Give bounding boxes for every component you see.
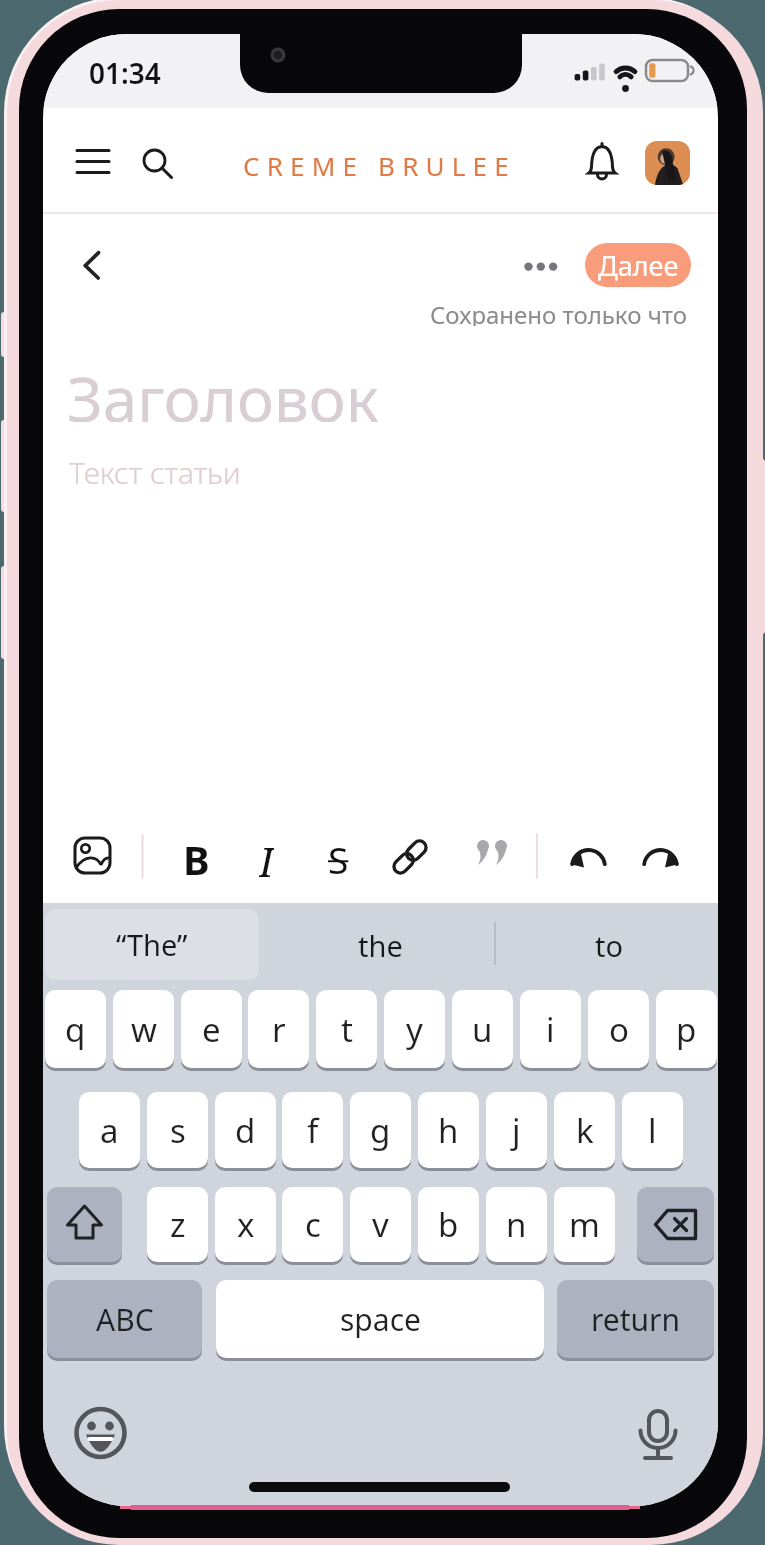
staticText: d [235,1108,256,1153]
button[interactable] [67,830,119,882]
button[interactable] [131,137,179,185]
button[interactable] [69,140,117,188]
staticText: j [512,1108,521,1153]
staticText: f [307,1108,319,1153]
button[interactable]: a [79,1092,140,1168]
button[interactable] [243,830,289,882]
button[interactable]: v [350,1187,411,1262]
button[interactable]: f [282,1092,343,1168]
button[interactable]: k [554,1092,615,1168]
button[interactable]: u [452,990,513,1068]
button[interactable]: q [45,990,106,1068]
staticText: return [591,1299,681,1340]
staticText: m [569,1202,600,1247]
staticText: Сохранено только что [430,298,687,326]
button[interactable]: “The” [45,909,259,980]
staticText: u [472,1007,493,1052]
staticText: z [170,1202,186,1247]
staticText: “The” [116,925,188,964]
button[interactable]: i [520,990,581,1068]
staticText: b [438,1202,459,1247]
button[interactable]: c [282,1187,343,1262]
staticText: a [100,1108,119,1153]
button[interactable]: l [622,1092,683,1168]
staticText: Текст статьи [69,452,241,488]
staticText: h [438,1108,459,1153]
button[interactable]: b [418,1187,479,1262]
button[interactable]: Далее [585,243,691,287]
staticText: space [340,1299,421,1340]
staticText: to [595,926,624,964]
button[interactable]: s [147,1092,208,1168]
staticText: the [358,926,403,964]
staticText: n [506,1202,527,1247]
staticText: r [272,1007,286,1052]
button[interactable] [631,1406,687,1462]
staticText: g [370,1108,391,1153]
button[interactable]: n [486,1187,547,1262]
button[interactable]: z [147,1187,208,1262]
staticText: c [305,1202,321,1247]
button[interactable]: g [350,1092,411,1168]
button[interactable]: space [216,1280,544,1358]
button[interactable] [173,830,219,882]
staticText: l [648,1108,657,1153]
staticText: e [202,1007,221,1052]
staticText: B [183,832,210,880]
staticText: v [372,1202,389,1247]
staticText: s [170,1108,186,1153]
button[interactable]: r [248,990,309,1068]
button[interactable] [563,830,615,882]
staticText: x [237,1202,255,1247]
button[interactable] [579,137,627,185]
button[interactable] [73,240,115,292]
button[interactable] [637,1187,714,1262]
staticText: k [576,1108,594,1153]
button[interactable] [313,830,363,882]
button[interactable]: to [579,926,639,964]
button[interactable]: j [486,1092,547,1168]
button[interactable] [73,1406,129,1462]
button[interactable]: ABC [47,1280,202,1358]
button[interactable]: m [554,1187,615,1262]
staticText: ABC [96,1299,154,1340]
button[interactable] [385,830,435,882]
staticText: o [609,1007,629,1052]
staticText: t [341,1007,353,1052]
staticText: S [328,834,349,880]
staticText: CREME BRULEE [243,148,516,183]
button[interactable]: p [656,990,717,1068]
button[interactable]: d [215,1092,276,1168]
button[interactable]: t [316,990,377,1068]
button[interactable] [645,141,690,185]
button[interactable] [47,1187,122,1262]
staticText: Заголовок [67,356,379,422]
staticText: i [546,1007,555,1052]
button[interactable]: o [588,990,649,1068]
staticText: w [131,1007,157,1052]
staticText: I [259,834,274,880]
button[interactable] [513,246,559,286]
staticText: q [65,1007,86,1052]
staticText: 01:34 [89,54,161,88]
button[interactable] [635,830,687,882]
button[interactable]: h [418,1092,479,1168]
button[interactable]: w [113,990,174,1068]
staticText: y [406,1007,423,1052]
button[interactable]: e [181,990,242,1068]
button[interactable]: y [384,990,445,1068]
button[interactable]: x [215,1187,276,1262]
staticText: Далее [598,247,679,284]
button[interactable] [457,830,507,882]
staticText: p [676,1007,697,1052]
button[interactable]: return [557,1280,714,1358]
button[interactable]: the [330,926,430,964]
